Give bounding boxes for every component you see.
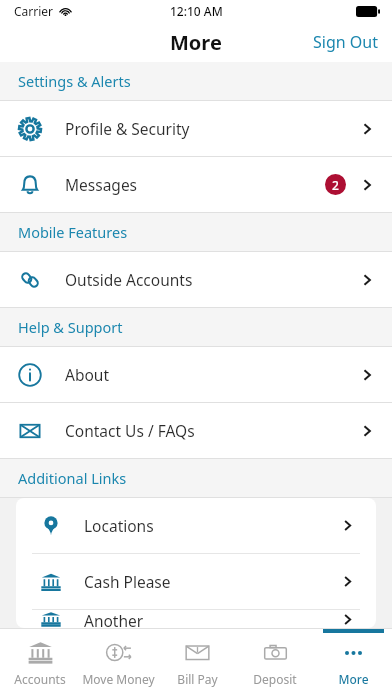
staticText: Another — [84, 610, 144, 628]
staticText: Profile & Security — [65, 118, 190, 139]
staticText: More — [170, 29, 222, 56]
staticText: Deposit — [253, 671, 297, 687]
button[interactable]: Accounts — [0, 629, 79, 696]
staticText: Help & Support — [18, 317, 123, 337]
staticText: Accounts — [14, 671, 66, 687]
button[interactable]: Messages — [0, 157, 392, 212]
button[interactable]: Locations — [16, 498, 376, 553]
staticText: Sign Out — [313, 31, 378, 53]
staticText: Move Money — [82, 671, 155, 687]
staticText: Outside Accounts — [65, 269, 193, 290]
staticText: Mobile Features — [18, 222, 128, 242]
staticText: About — [65, 364, 109, 385]
staticText: More — [338, 671, 369, 687]
button[interactable]: Outside Accounts — [0, 252, 392, 307]
staticText: Bill Pay — [177, 671, 218, 687]
button[interactable]: Deposit — [236, 629, 314, 696]
button[interactable]: Profile & Security — [0, 101, 392, 156]
button[interactable]: Move Money — [79, 629, 158, 696]
staticText: Contact Us / FAQs — [65, 420, 195, 441]
button[interactable]: Sign Out — [299, 23, 392, 61]
button[interactable]: Bill Pay — [158, 629, 236, 696]
button[interactable]: Another — [16, 610, 376, 628]
staticText: Settings & Alerts — [18, 71, 131, 91]
staticText: Additional Links — [18, 468, 127, 488]
button[interactable]: More — [314, 629, 392, 696]
button[interactable]: Cash Please — [16, 554, 376, 609]
staticText: 2 — [332, 177, 339, 193]
staticText: Cash Please — [84, 571, 171, 592]
staticText: Carrier — [14, 3, 54, 19]
staticText: Messages — [65, 174, 138, 195]
button[interactable]: Contact Us / FAQs — [0, 403, 392, 458]
staticText: 12:10 AM — [170, 3, 223, 19]
staticText: Locations — [84, 515, 154, 536]
button[interactable]: About — [0, 347, 392, 402]
